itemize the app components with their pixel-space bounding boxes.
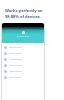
button[interactable] — [2, 62, 44, 68]
staticText: Works perfectly on — [5, 8, 43, 13]
staticText: 98.88% of devices — [5, 14, 40, 19]
button[interactable] — [2, 56, 44, 62]
button[interactable] — [2, 44, 44, 50]
button[interactable] — [2, 68, 44, 74]
button[interactable] — [2, 74, 44, 80]
button[interactable] — [2, 50, 44, 56]
